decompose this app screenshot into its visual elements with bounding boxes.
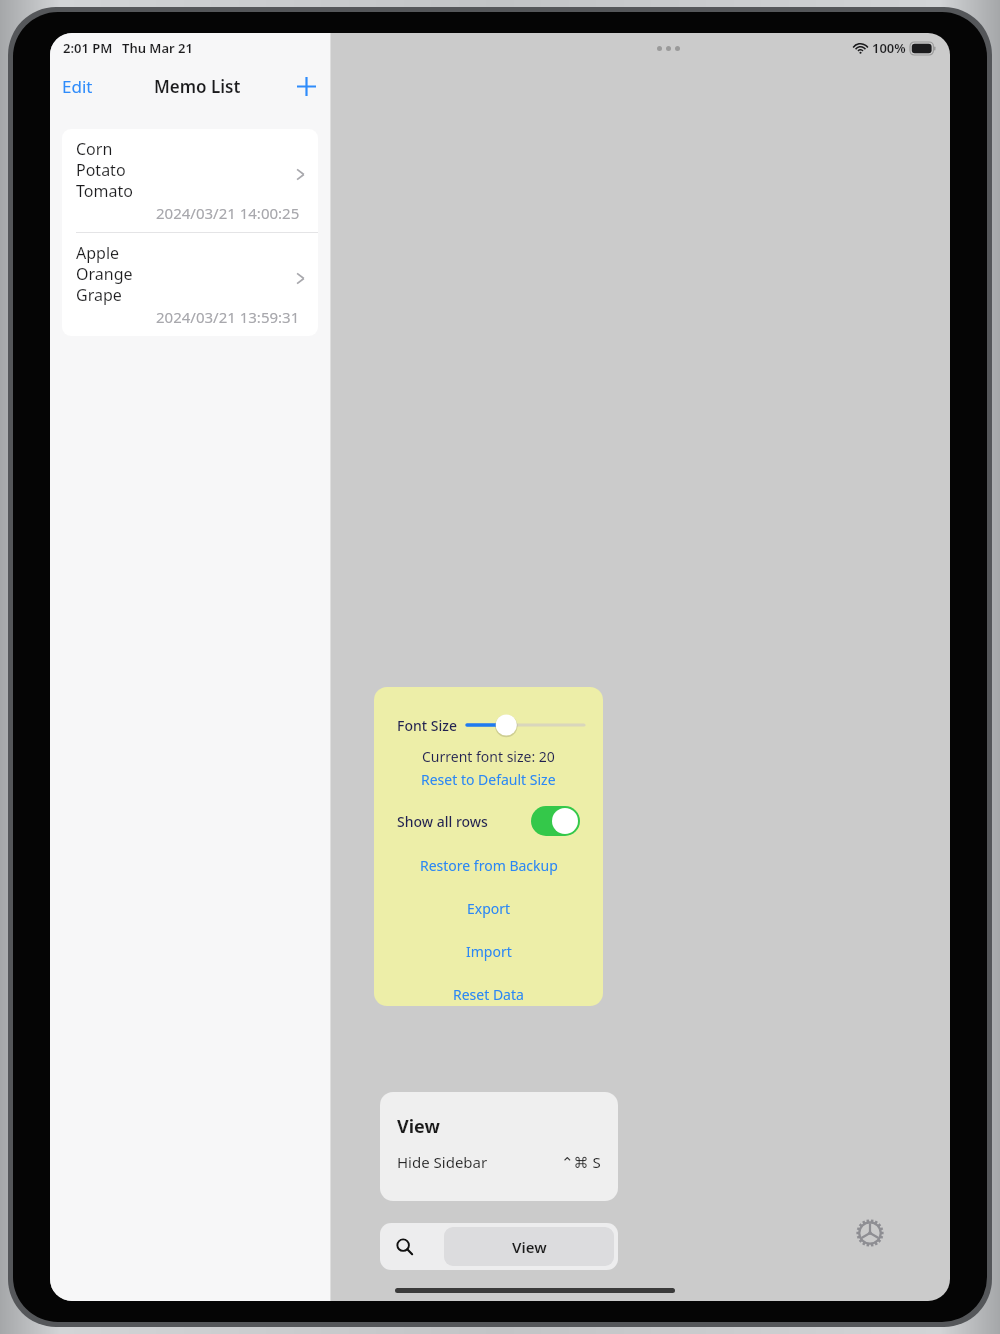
button[interactable]: Apple <box>62 233 318 336</box>
staticText: Thu Mar 21 <box>122 39 193 57</box>
staticText: Orange <box>76 263 133 284</box>
staticText: View <box>512 1237 547 1257</box>
staticText: Restore from Backup <box>420 856 558 875</box>
button[interactable]: Edit <box>50 69 105 104</box>
staticText: Apple <box>76 242 120 263</box>
staticText: Memo List <box>154 75 241 98</box>
button[interactable]: Corn <box>62 129 318 232</box>
staticText: Hide Sidebar <box>397 1152 488 1172</box>
staticText: Current font size: 20 <box>422 747 555 766</box>
staticText: Reset to Default Size <box>421 770 556 789</box>
staticText: Reset Data <box>453 985 524 1004</box>
button[interactable]: View <box>380 1092 618 1201</box>
button[interactable]: View <box>444 1227 614 1266</box>
staticText: Show all rows <box>397 812 488 831</box>
staticText: 100% <box>872 39 906 57</box>
button[interactable]: Settings <box>845 1208 895 1258</box>
staticText: Potato <box>76 159 126 180</box>
staticText: Tomato <box>76 180 133 201</box>
button[interactable]: Add memo <box>283 69 330 104</box>
staticText: 2024/03/21 13:59:31 <box>156 307 300 327</box>
staticText: Export <box>467 899 511 918</box>
button[interactable]: Export <box>461 898 517 919</box>
button[interactable]: Reset to Default Size <box>415 769 562 790</box>
staticText: Corn <box>76 138 113 159</box>
staticText: Import <box>466 942 512 961</box>
staticText: ⌃⌘ S <box>561 1152 601 1172</box>
staticText: 2:01 PM <box>63 39 113 57</box>
staticText: Grape <box>76 284 122 305</box>
button[interactable]: Show all rows toggle <box>531 806 580 836</box>
button[interactable]: Import <box>460 941 518 962</box>
staticText: View <box>397 1114 440 1139</box>
button[interactable]: Reset Data <box>447 984 530 1005</box>
staticText: Edit <box>62 75 93 98</box>
staticText: Font Size <box>397 716 457 735</box>
button[interactable]: Restore from Backup <box>414 855 564 876</box>
button[interactable]: Search <box>392 1234 417 1259</box>
staticText: 2024/03/21 14:00:25 <box>156 203 300 223</box>
